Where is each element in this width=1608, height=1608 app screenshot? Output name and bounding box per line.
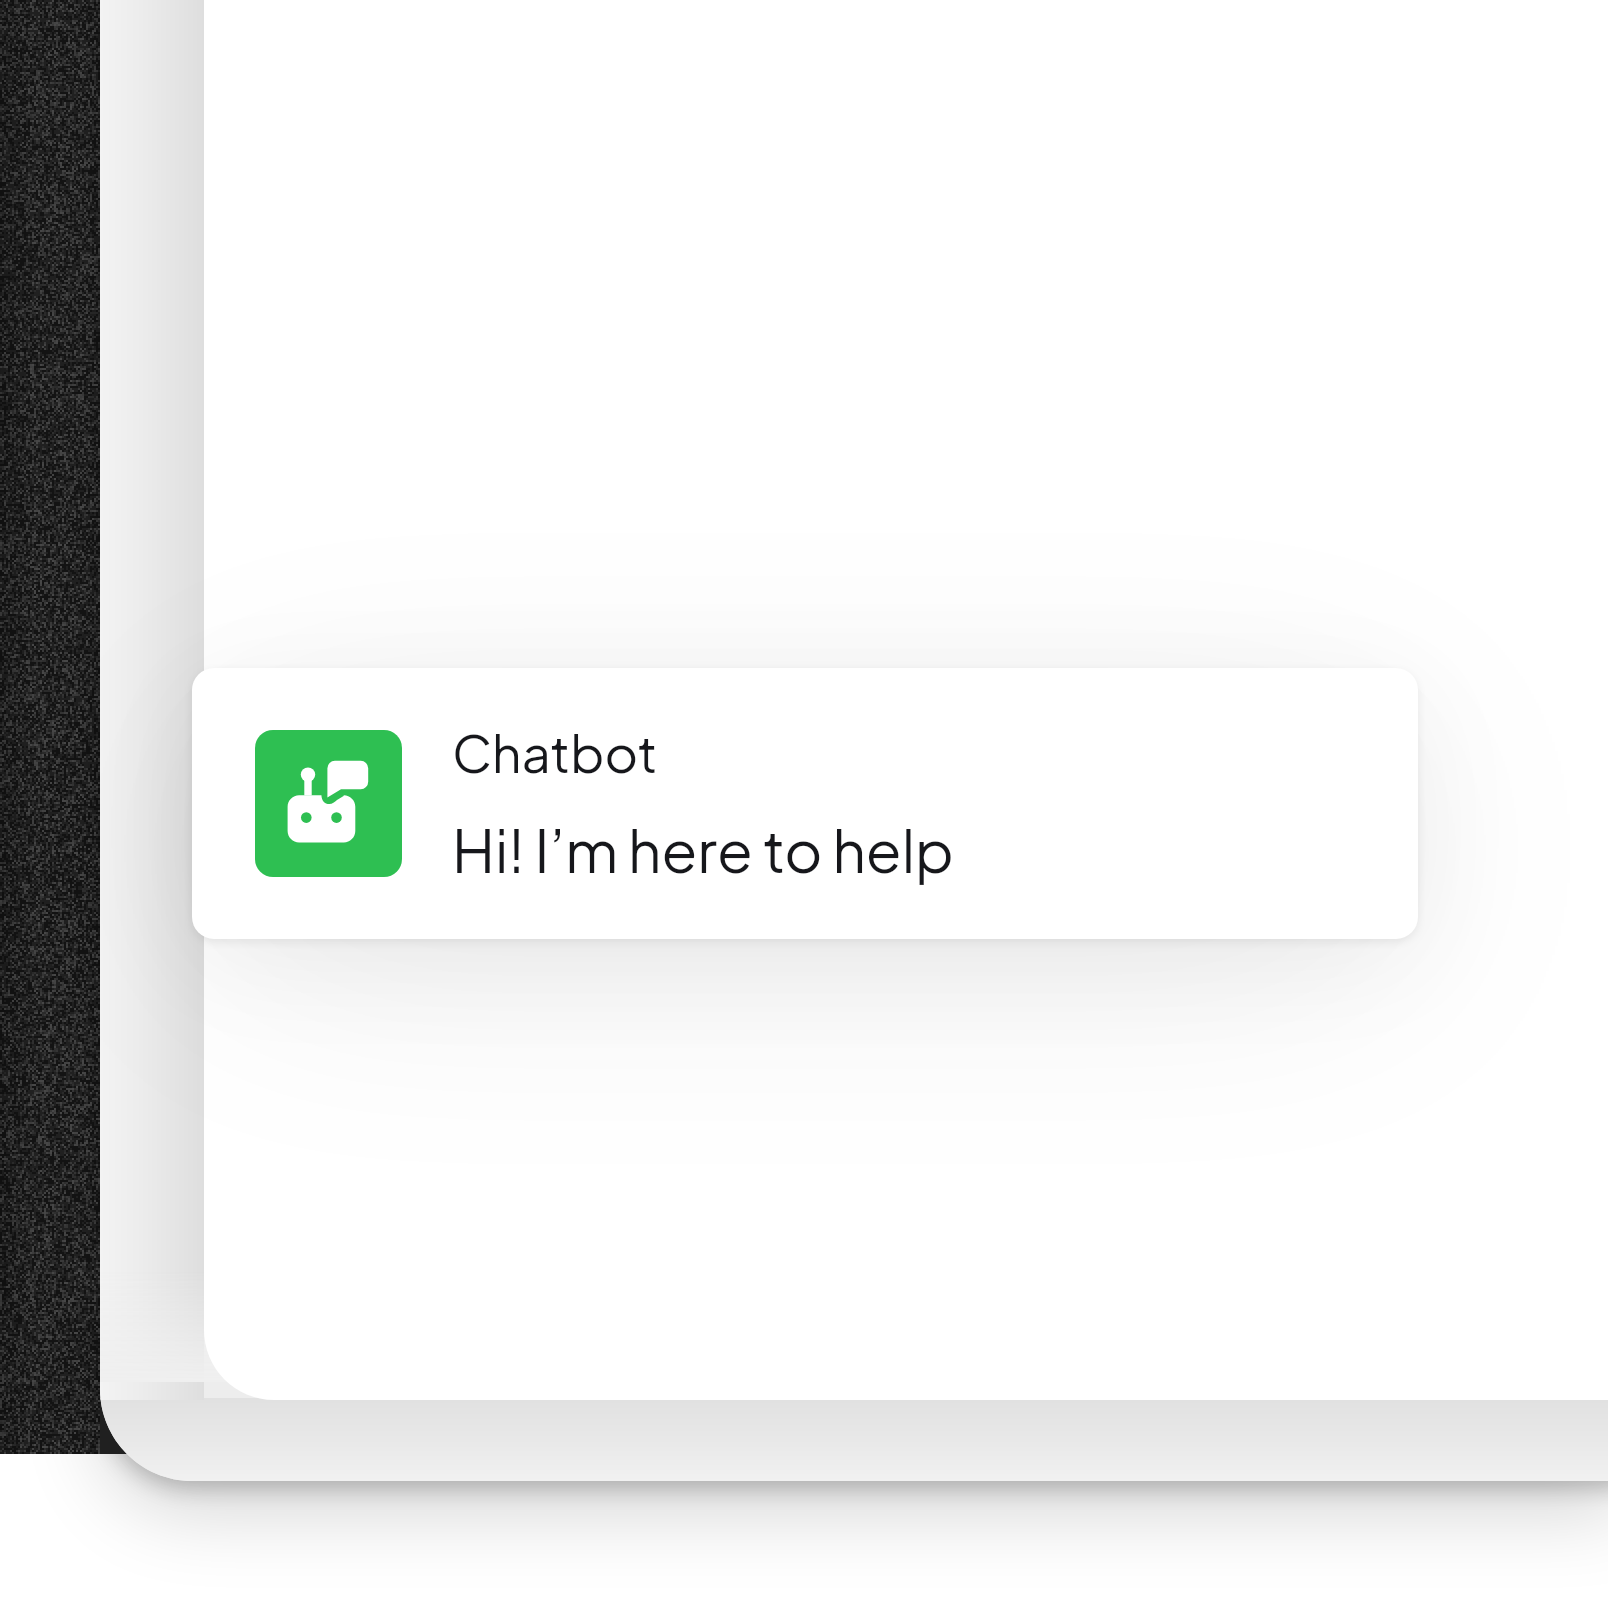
staticText: Chatbot xyxy=(452,720,658,784)
other: Chatbot app icon xyxy=(255,730,402,877)
staticText: Hi! I’m here to help xyxy=(452,812,954,886)
button[interactable]: Chatbot app icon xyxy=(192,668,1418,939)
